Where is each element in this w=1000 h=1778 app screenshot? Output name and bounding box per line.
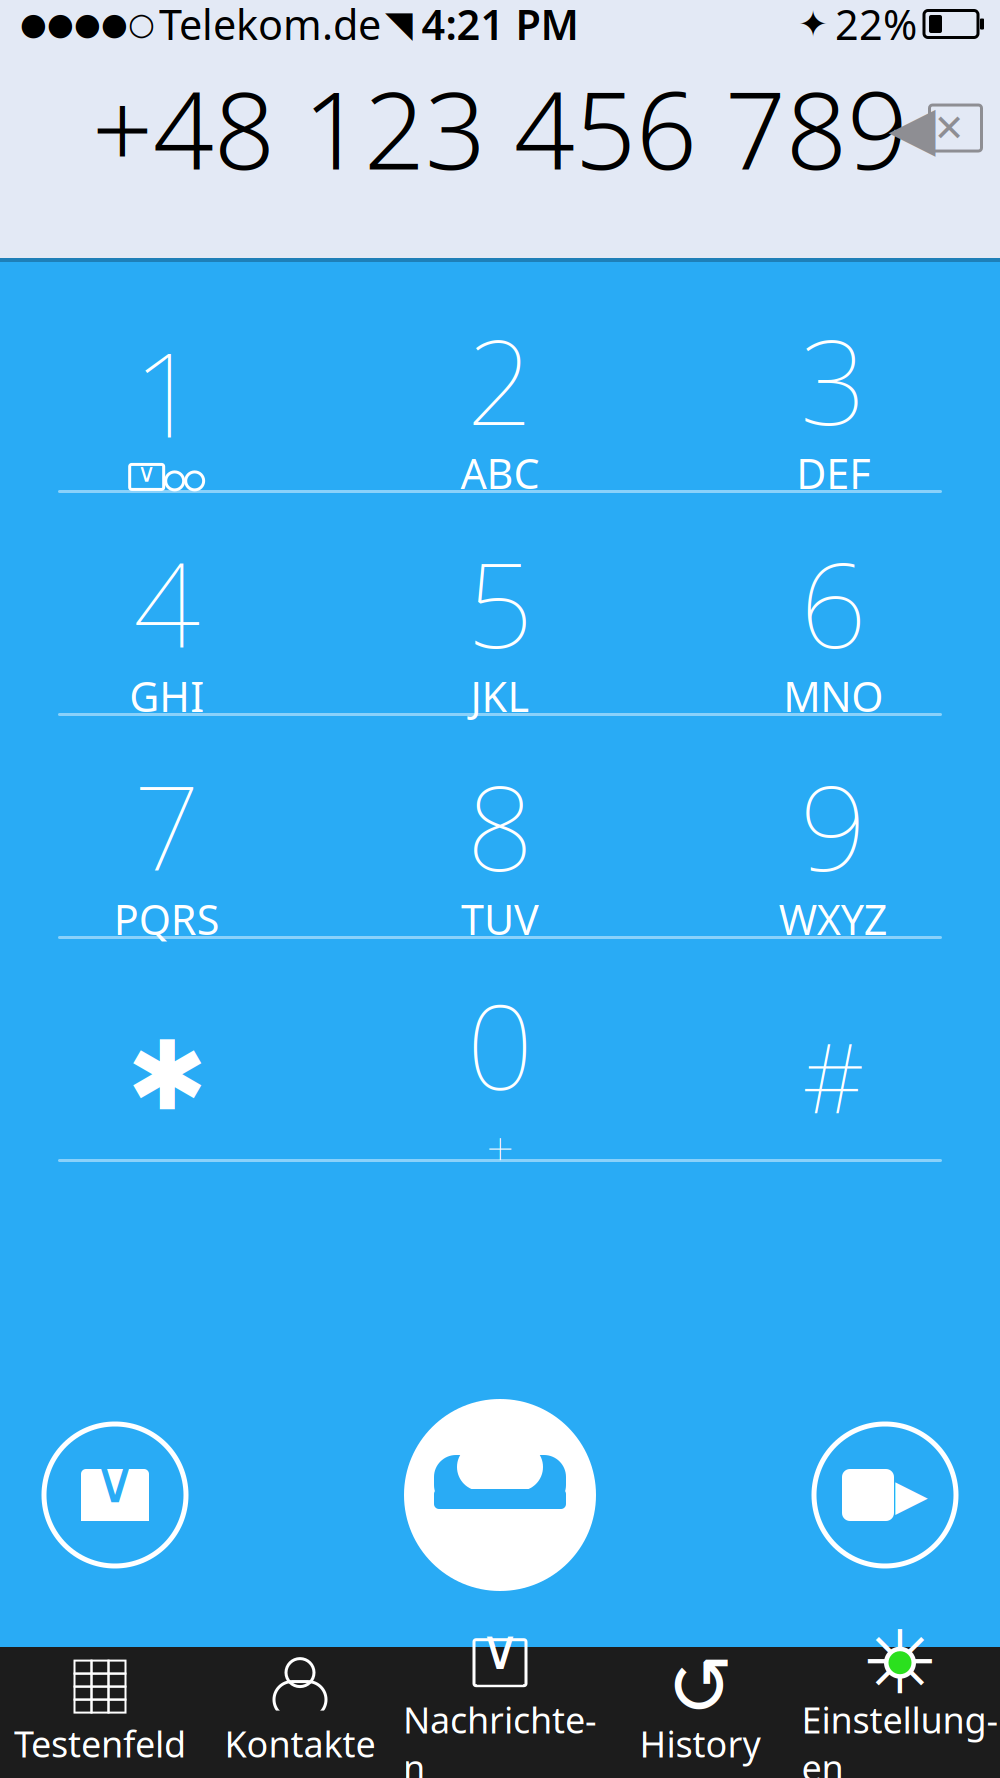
staticText: WXYZ — [779, 891, 888, 946]
button[interactable]: Kontakte — [200, 1647, 400, 1778]
staticText: ◥ — [385, 4, 413, 44]
staticText: 3 — [800, 302, 867, 457]
staticText: MNO — [783, 668, 883, 723]
staticText: 8 — [466, 748, 533, 903]
staticText: DEF — [796, 445, 870, 500]
button[interactable]: ✱ — [0, 993, 333, 1159]
staticText: 0 — [466, 966, 533, 1122]
staticText: 2 — [466, 302, 533, 457]
staticText: +48 123 456 789 — [92, 57, 908, 199]
button[interactable]: Video call — [808, 1418, 962, 1572]
staticText: GHI — [129, 668, 204, 723]
staticText: ∨ — [92, 1446, 137, 1516]
staticText: Nachrichten — [403, 1696, 597, 1778]
staticText: ✱ — [127, 1021, 207, 1130]
button[interactable]: Call — [401, 1396, 599, 1594]
staticText: Testenfeld — [14, 1720, 186, 1767]
button[interactable]: 7 — [0, 770, 333, 936]
staticText: 22% — [835, 0, 917, 51]
staticText: 7 — [133, 748, 200, 903]
staticText: PQRS — [114, 891, 220, 946]
staticText: ∨ — [137, 458, 156, 487]
staticText: Kontakte — [224, 1720, 375, 1767]
staticText: 5 — [466, 525, 533, 680]
staticText: ◀ — [888, 93, 935, 163]
staticText: ABC — [460, 445, 539, 500]
button[interactable]: Delete — [870, 68, 1000, 188]
staticText: + — [486, 1116, 513, 1180]
button[interactable]: # — [667, 993, 1000, 1159]
button[interactable]: 9 — [667, 770, 1000, 936]
button[interactable]: 6 — [667, 547, 1000, 713]
staticText: Telekom.de — [159, 0, 381, 51]
staticText: ✳ — [863, 1613, 937, 1713]
staticText: Einstellungen — [801, 1696, 998, 1778]
button[interactable]: 8 — [333, 770, 667, 936]
staticText: ●●●●○ — [20, 7, 155, 41]
staticText: ↺ — [666, 1641, 733, 1732]
staticText: ∨ — [479, 1618, 520, 1681]
staticText: 4 — [133, 525, 200, 680]
button[interactable]: 2 — [333, 324, 667, 490]
button[interactable]: 0 — [333, 993, 667, 1159]
staticText: ✦ — [798, 4, 828, 44]
staticText: ▶ — [895, 1471, 928, 1519]
staticText: 6 — [800, 525, 867, 680]
button[interactable]: 3 — [667, 324, 1000, 490]
button[interactable]: 1 — [0, 324, 333, 490]
staticText: 4:21 PM — [421, 0, 578, 51]
button[interactable]: 4 — [0, 547, 333, 713]
staticText: TUV — [461, 891, 539, 946]
staticText: # — [802, 1012, 864, 1140]
staticText: 1 — [133, 314, 200, 470]
button[interactable]: 5 — [333, 547, 667, 713]
button[interactable]: Testenfeld — [0, 1647, 200, 1778]
staticText: History — [639, 1720, 760, 1767]
staticText: JKL — [470, 668, 529, 723]
button[interactable]: ↺ — [600, 1647, 800, 1778]
button[interactable]: ✳ — [800, 1647, 1000, 1778]
staticText: 9 — [800, 748, 867, 903]
button[interactable]: Send message — [38, 1418, 192, 1572]
button[interactable]: ∨ — [400, 1647, 600, 1778]
staticText: ✕ — [933, 107, 964, 149]
